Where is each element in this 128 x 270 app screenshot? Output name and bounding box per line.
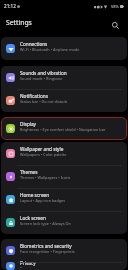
staticText: Themes xyxy=(20,169,38,175)
staticText: Connections xyxy=(20,41,48,47)
staticText: Permission manager xyxy=(20,266,57,268)
staticText: Status bar • Do not disturb xyxy=(20,99,68,104)
staticText: Layout • App icon badges xyxy=(20,198,66,203)
staticText: Wallpapers • Color palette xyxy=(20,152,67,157)
staticText: Privacy xyxy=(20,260,36,266)
staticText: Notifications xyxy=(20,93,48,99)
button[interactable]: Lock screen xyxy=(1,211,127,234)
staticText: Face recognition • Fingerprints xyxy=(20,249,75,254)
staticText: Display xyxy=(20,121,36,127)
button[interactable]: Home screen xyxy=(1,188,127,211)
button[interactable]: Themes xyxy=(1,165,127,188)
staticText: Screen lock type • Always On xyxy=(20,221,71,226)
staticText: Wallpaper and style xyxy=(20,146,64,152)
staticText: Lock screen xyxy=(20,215,46,221)
staticText: Biometrics and security xyxy=(20,243,72,249)
staticText: Wi-Fi • Bluetooth • Airplane mode xyxy=(20,47,80,52)
button[interactable]: Notifications xyxy=(1,89,127,112)
staticText: 21:12 xyxy=(4,3,16,9)
button[interactable]: Connections xyxy=(1,37,127,60)
button[interactable]: Wallpaper and style xyxy=(1,142,127,165)
staticText: Sounds and vibration xyxy=(20,70,67,76)
staticText: Sound mode • Ringtone xyxy=(20,76,63,81)
staticText: Settings xyxy=(6,18,32,27)
button[interactable]: Privacy xyxy=(1,262,127,270)
button[interactable]: Search xyxy=(109,19,121,31)
staticText: Home screen xyxy=(20,192,50,198)
button[interactable]: Display xyxy=(1,117,127,140)
staticText: 58% xyxy=(111,4,119,9)
staticText: Themes • Wallpapers • Icons xyxy=(20,175,71,180)
staticText: Brightness • Eye comfort shield • Naviga… xyxy=(20,127,106,132)
button[interactable]: Biometrics and security xyxy=(1,239,127,262)
button[interactable]: Sounds and vibration xyxy=(1,66,127,89)
